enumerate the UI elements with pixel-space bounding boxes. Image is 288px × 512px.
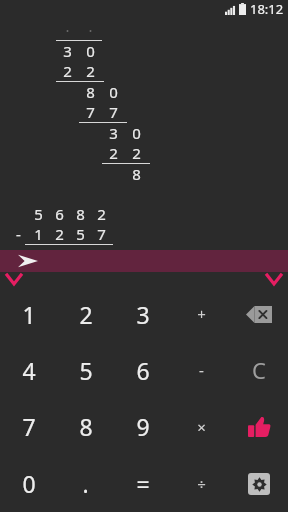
button[interactable]: Accept <box>230 398 288 455</box>
other: Evaluate <box>18 254 38 268</box>
staticText: 7 <box>22 411 36 442</box>
button[interactable]: Backspace <box>230 286 288 342</box>
staticText: 0 <box>109 82 118 102</box>
staticText: = <box>136 468 150 499</box>
staticText: · <box>65 20 70 40</box>
staticText: 2 <box>109 143 118 163</box>
staticText: 6 <box>55 204 64 224</box>
button[interactable]: 9 <box>114 398 172 455</box>
staticText: 2 <box>63 61 72 81</box>
button[interactable]: 6 <box>114 342 172 398</box>
button[interactable]: + <box>172 286 230 342</box>
button[interactable]: . <box>57 455 114 512</box>
staticText: × <box>197 417 206 437</box>
staticText: 0 <box>132 123 141 143</box>
staticText: 8 <box>86 82 95 102</box>
button[interactable]: Evaluate <box>0 250 288 272</box>
button[interactable]: Next <box>262 272 286 286</box>
staticText: 7 <box>97 224 106 244</box>
staticText: 5 <box>76 224 85 244</box>
staticText: 5 <box>34 204 43 224</box>
button[interactable]: Settings <box>230 455 288 512</box>
button[interactable]: 4 <box>0 342 57 398</box>
button[interactable]: 5 <box>57 342 114 398</box>
button[interactable]: 8 <box>57 398 114 455</box>
staticText: 8 <box>79 411 93 442</box>
staticText: ÷ <box>197 474 206 494</box>
staticText: 8 <box>132 164 141 184</box>
staticText: 3 <box>63 41 72 61</box>
button[interactable]: Clear <box>230 342 288 398</box>
staticText: 0 <box>86 41 95 61</box>
staticText: + <box>197 304 206 324</box>
staticText: 3 <box>136 299 150 330</box>
staticText: 2 <box>86 61 95 81</box>
staticText: C <box>252 355 266 385</box>
staticText: · <box>88 20 93 40</box>
staticText: 8 <box>76 204 85 224</box>
staticText: 6 <box>136 355 150 386</box>
staticText: 1 <box>34 224 43 244</box>
button[interactable]: 2 <box>57 286 114 342</box>
staticText: 3 <box>109 123 118 143</box>
button[interactable]: ÷ <box>172 455 230 512</box>
button[interactable]: 1 <box>0 286 57 342</box>
staticText: 2 <box>79 299 93 330</box>
staticText: 5 <box>79 355 93 386</box>
staticText: 4 <box>22 355 36 386</box>
staticText: 1 <box>22 299 36 330</box>
staticText: 18:12 <box>250 0 284 18</box>
button[interactable]: 7 <box>0 398 57 455</box>
button[interactable]: - <box>172 342 230 398</box>
staticText: - <box>16 224 21 244</box>
button[interactable]: Previous <box>2 272 26 286</box>
staticText: . <box>82 468 89 499</box>
staticText: 7 <box>109 102 118 122</box>
staticText: 2 <box>132 143 141 163</box>
staticText: 7 <box>86 102 95 122</box>
staticText: - <box>199 360 204 380</box>
staticText: 2 <box>97 204 106 224</box>
staticText: 9 <box>136 411 150 442</box>
staticText: 0 <box>22 468 36 499</box>
staticText: 2 <box>55 224 64 244</box>
button[interactable]: × <box>172 398 230 455</box>
button[interactable]: = <box>114 455 172 512</box>
button[interactable]: 0 <box>0 455 57 512</box>
button[interactable]: 3 <box>114 286 172 342</box>
